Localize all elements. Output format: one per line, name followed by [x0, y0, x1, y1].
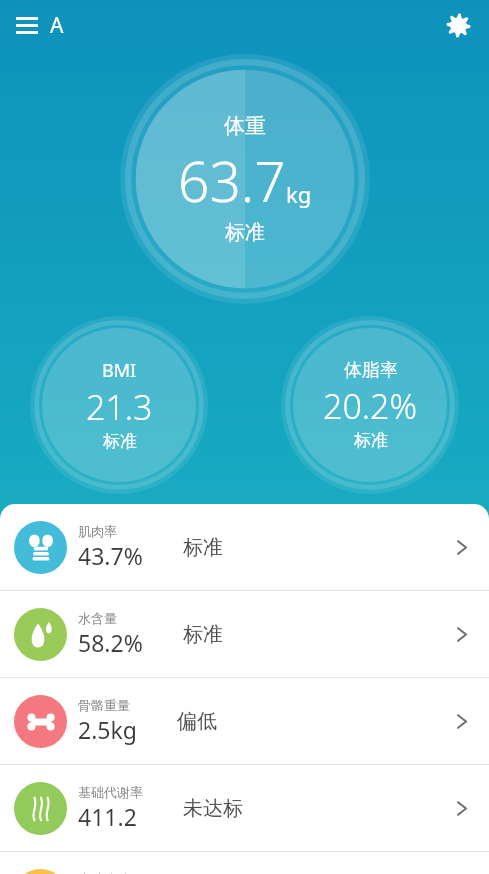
- staticText: 411.2: [78, 801, 137, 832]
- staticText: 43.7%: [78, 540, 143, 571]
- staticText: 标准: [225, 220, 265, 245]
- staticText: 63.7: [178, 143, 286, 218]
- staticText: 内脏脂肪: [78, 871, 130, 874]
- staticText: 体重: [224, 113, 266, 139]
- button[interactable]: 水含量: [0, 591, 489, 677]
- staticText: 58.2%: [78, 627, 143, 658]
- staticText: 未达标: [183, 796, 243, 821]
- staticText: 20.2%: [323, 383, 418, 429]
- button[interactable]: 骨骼重量: [0, 678, 489, 764]
- staticText: 基础代谢率: [78, 784, 143, 800]
- staticText: 骨骼重量: [78, 697, 130, 713]
- staticText: 肌肉率: [78, 523, 117, 539]
- staticText: 标准: [183, 535, 223, 560]
- button[interactable]: 体重: [120, 54, 370, 304]
- button[interactable]: 基础代谢率: [0, 765, 489, 851]
- button[interactable]: 肌肉率: [0, 504, 489, 590]
- staticText: 标准: [354, 430, 388, 451]
- button[interactable]: BMI: [30, 316, 208, 494]
- staticText: 标准: [103, 431, 137, 452]
- staticText: 21.3: [86, 384, 153, 430]
- button[interactable]: Menu: [6, 4, 48, 46]
- staticText: 偏低: [177, 709, 217, 734]
- staticText: 2.5kg: [78, 714, 137, 745]
- button[interactable]: 内脏脂肪: [0, 852, 489, 874]
- staticText: kg: [286, 179, 312, 209]
- button[interactable]: Settings: [437, 4, 479, 46]
- staticText: BMI: [102, 358, 137, 383]
- button[interactable]: 体脂率: [281, 316, 459, 494]
- staticText: 标准: [183, 622, 223, 647]
- staticText: 水含量: [78, 610, 117, 626]
- staticText: A: [50, 11, 64, 40]
- staticText: 体脂率: [344, 359, 398, 382]
